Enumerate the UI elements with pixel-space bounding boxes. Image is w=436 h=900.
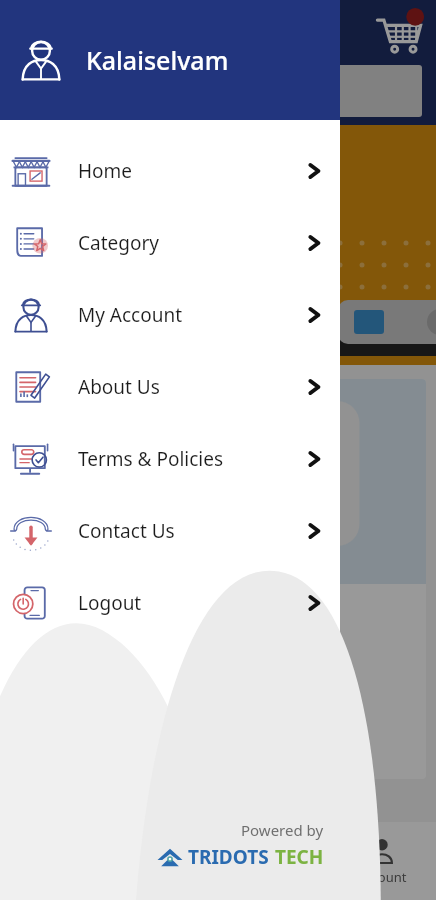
button[interactable]: Cart	[218, 822, 327, 900]
staticText: Search Store	[36, 80, 131, 102]
button[interactable]: About Us	[0, 351, 340, 423]
staticText: first-aid medical supplies	[24, 665, 212, 687]
button[interactable]: Account	[327, 822, 436, 900]
staticText: Contact Us	[78, 518, 175, 544]
staticText: TECH	[275, 844, 324, 870]
button[interactable]: Kalaiselvam	[0, 0, 340, 120]
button[interactable]: Terms & Policies	[0, 423, 340, 495]
staticText: Kalaiselvam	[86, 43, 229, 77]
staticText: Terms & Policies	[78, 446, 224, 472]
staticText: Complete First Aid Kit	[24, 596, 277, 630]
staticText: Cotton And Bandage Set	[24, 636, 231, 659]
staticText: Account	[357, 868, 407, 886]
button[interactable]: My Account	[0, 279, 340, 351]
staticText: Home	[78, 158, 133, 184]
button[interactable]: Home	[0, 135, 340, 207]
button[interactable]: Contact Us	[0, 495, 340, 567]
staticText: Powered by	[241, 820, 324, 840]
staticText: About Us	[78, 374, 160, 400]
staticText: Logout	[78, 590, 142, 616]
staticText: TRIDOTS	[188, 844, 269, 870]
staticText: My Account	[78, 302, 183, 328]
button[interactable]: Search Store	[24, 65, 422, 117]
button[interactable]: Category	[109, 822, 218, 900]
button[interactable]: Complete First Aid Kit	[10, 379, 426, 779]
button[interactable]: Logout	[0, 567, 340, 639]
staticText: Category	[78, 230, 159, 256]
button[interactable]: Cart	[372, 6, 426, 60]
button[interactable]: Category	[0, 207, 340, 279]
